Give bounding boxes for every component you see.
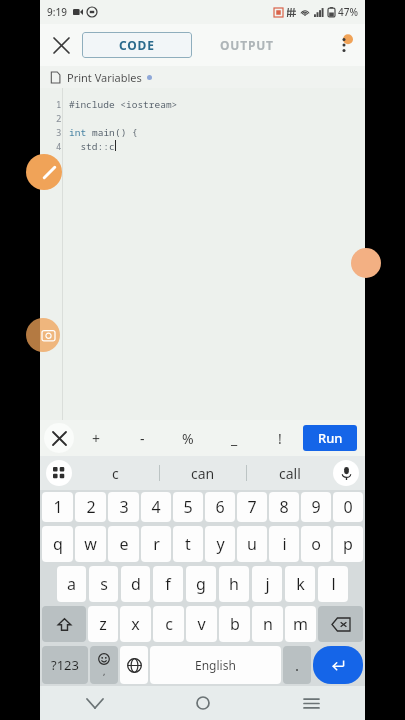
button[interactable]: ?123 [42, 646, 88, 684]
button[interactable]: t [173, 526, 203, 562]
button[interactable]: n [252, 606, 283, 642]
staticText: r [153, 533, 160, 555]
staticText: f [165, 573, 171, 595]
staticText: 4 [56, 140, 62, 152]
button[interactable]: k [285, 566, 315, 602]
button[interactable]: 6 [205, 492, 235, 522]
staticText: a [67, 573, 76, 595]
button[interactable]: Clipboard [46, 460, 72, 486]
button[interactable]: Home [149, 686, 257, 720]
staticText: h [229, 573, 239, 595]
staticText: u [247, 533, 257, 555]
staticText: c [165, 613, 173, 635]
button[interactable]: 0 [333, 492, 363, 522]
button[interactable]: Recent apps [257, 686, 365, 720]
button[interactable]: Back [40, 686, 149, 720]
staticText: t [185, 533, 191, 555]
button[interactable]: w [75, 526, 106, 562]
button[interactable]: Emoji [90, 646, 118, 684]
button[interactable]: Action [351, 248, 381, 278]
staticText: 0 [343, 496, 353, 518]
staticText: 9:19 [47, 5, 67, 19]
staticText: 3 [56, 126, 62, 138]
button[interactable]: More options [323, 24, 365, 66]
button[interactable]: a [57, 566, 86, 602]
button[interactable]: d [121, 566, 150, 602]
staticText: call [279, 464, 301, 483]
staticText: k [296, 573, 305, 595]
staticText: - [140, 429, 145, 448]
button[interactable]: English [150, 646, 281, 684]
button[interactable]: Print Variables [50, 66, 365, 88]
button[interactable]: Close toolbar [44, 423, 74, 453]
staticText: std::c [69, 140, 115, 153]
button[interactable]: OUTPUT [192, 32, 302, 58]
staticText: x [131, 613, 140, 635]
button[interactable]: r [141, 526, 171, 562]
button[interactable]: z [88, 606, 118, 642]
button[interactable]: e [108, 526, 139, 562]
button[interactable]: - [119, 420, 165, 456]
button[interactable]: Enter [313, 646, 363, 684]
button[interactable]: q [42, 526, 73, 562]
button[interactable]: _ [211, 420, 257, 456]
button[interactable]: 5 [173, 492, 203, 522]
button[interactable]: CODE [82, 32, 192, 58]
button[interactable]: 9 [301, 492, 331, 522]
staticText: English [195, 657, 236, 673]
button[interactable]: Camera [26, 318, 60, 352]
button[interactable]: g [186, 566, 216, 602]
button[interactable]: Run [303, 425, 357, 451]
staticText: can [191, 464, 215, 483]
button[interactable]: call [247, 456, 333, 490]
button[interactable]: i [269, 526, 299, 562]
staticText: b [230, 613, 240, 635]
staticText: + [92, 429, 101, 448]
button[interactable]: v [186, 606, 217, 642]
button[interactable]: p [333, 526, 363, 562]
button[interactable]: j [252, 566, 282, 602]
staticText: Print Variables [67, 70, 142, 85]
button[interactable]: 8 [269, 492, 299, 522]
button[interactable]: % [165, 420, 211, 456]
staticText: l [331, 573, 336, 595]
button[interactable]: 4 [141, 492, 171, 522]
button[interactable]: can [160, 456, 246, 490]
staticText: _ [231, 429, 238, 448]
button[interactable]: Change language [120, 646, 148, 684]
button[interactable]: s [89, 566, 118, 602]
button[interactable]: c [153, 606, 184, 642]
staticText: n [263, 613, 273, 635]
button[interactable]: Close [40, 24, 82, 66]
button[interactable]: h [219, 566, 249, 602]
button[interactable]: ! [257, 420, 303, 456]
button[interactable]: Backspace [318, 606, 363, 642]
button[interactable]: u [237, 526, 267, 562]
staticText: s [100, 573, 108, 595]
button[interactable]: Voice input [333, 460, 359, 486]
button[interactable]: l [318, 566, 348, 602]
button[interactable]: o [301, 526, 331, 562]
button[interactable]: Edit [26, 154, 62, 190]
button[interactable]: y [205, 526, 235, 562]
button[interactable]: b [219, 606, 250, 642]
button[interactable]: 7 [237, 492, 267, 522]
staticText: i [282, 533, 287, 555]
button[interactable]: 3 [108, 492, 139, 522]
button[interactable]: m [285, 606, 316, 642]
staticText: 5 [183, 496, 193, 518]
staticText: e [119, 533, 129, 555]
staticText: Run [318, 429, 343, 447]
staticText: 4 [151, 496, 161, 518]
staticText: z [99, 613, 107, 635]
button[interactable]: 2 [75, 492, 106, 522]
staticText: OUTPUT [220, 37, 274, 53]
button[interactable]: f [153, 566, 183, 602]
staticText: 6 [215, 496, 225, 518]
button[interactable]: 1 [42, 492, 73, 522]
button[interactable]: Shift [42, 606, 86, 642]
button[interactable]: + [74, 420, 119, 456]
button[interactable]: x [120, 606, 151, 642]
button[interactable]: . [283, 646, 311, 684]
button[interactable]: c [72, 456, 159, 490]
